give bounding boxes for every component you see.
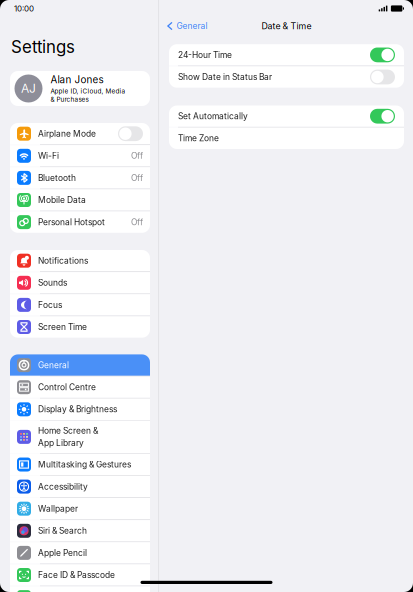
staticText: Sounds <box>38 278 67 288</box>
button[interactable]: Home Screen & <box>10 421 150 453</box>
button[interactable]: Mobile Data <box>10 189 150 211</box>
button[interactable]: Time Zone <box>169 128 404 149</box>
staticText: Wi-Fi <box>38 151 59 161</box>
staticText: Face ID & Passcode <box>38 570 115 580</box>
button[interactable]: Multitasking & Gestures <box>10 454 150 475</box>
staticText: & Purchases <box>50 95 88 103</box>
button[interactable]: Bluetooth <box>10 167 150 189</box>
staticText: Siri & Search <box>38 526 87 536</box>
staticText: Bluetooth <box>38 173 76 183</box>
staticText: 24-Hour Time <box>178 50 232 60</box>
button[interactable]: Screen Time <box>10 316 150 338</box>
staticText: App Library <box>38 438 84 448</box>
button[interactable]: Set Automatically <box>169 105 404 127</box>
button[interactable]: Battery <box>10 586 150 592</box>
button[interactable]: 24-Hour Time <box>169 44 404 66</box>
button[interactable]: Siri & Search <box>10 520 150 541</box>
staticText: Show Date in Status Bar <box>178 72 272 82</box>
button[interactable]: General <box>165 18 209 34</box>
button[interactable]: AJ <box>10 71 150 106</box>
button[interactable]: Display & Brightness <box>10 399 150 420</box>
staticText: Settings <box>11 37 75 57</box>
staticText: Personal Hotspot <box>38 217 105 227</box>
staticText: Apple Pencil <box>38 548 87 558</box>
button[interactable]: Control Centre <box>10 376 150 398</box>
staticText: Apple ID, iCloud, Media <box>50 87 125 95</box>
button[interactable]: General <box>10 354 150 376</box>
button[interactable]: Accessibility <box>10 476 150 497</box>
staticText: Multitasking & Gestures <box>38 459 131 470</box>
staticText: 10:00 <box>14 4 34 13</box>
staticText: General <box>176 21 207 31</box>
button[interactable]: Focus <box>10 294 150 316</box>
staticText: Focus <box>38 300 62 310</box>
staticText: Alan Jones <box>50 74 103 86</box>
staticText: Wallpaper <box>38 504 78 514</box>
button[interactable]: Notifications <box>10 250 150 271</box>
staticText: Off <box>131 173 143 183</box>
button[interactable]: Wi-Fi <box>10 145 150 166</box>
staticText: Off <box>131 217 143 227</box>
staticText: Control Centre <box>38 382 96 392</box>
button[interactable]: Personal Hotspot <box>10 211 150 233</box>
staticText: Date & Time <box>261 21 311 31</box>
staticText: Mobile Data <box>38 195 86 205</box>
staticText: Screen Time <box>38 322 87 332</box>
button[interactable]: Show Date in Status Bar <box>169 66 404 88</box>
button[interactable]: Sounds <box>10 272 150 293</box>
button[interactable]: Airplane Mode <box>10 123 150 144</box>
staticText: General <box>38 360 69 370</box>
staticText: Accessibility <box>38 481 88 492</box>
staticText: Airplane Mode <box>38 129 96 139</box>
staticText: Time Zone <box>178 133 219 143</box>
staticText: AJ <box>21 81 36 96</box>
staticText: Off <box>131 151 143 161</box>
staticText: Display & Brightness <box>38 404 117 414</box>
button[interactable]: Face ID & Passcode <box>10 564 150 586</box>
staticText: Set Automatically <box>178 111 248 121</box>
button[interactable]: Apple Pencil <box>10 542 150 564</box>
staticText: Home Screen & <box>38 426 98 436</box>
button[interactable]: Wallpaper <box>10 498 150 519</box>
staticText: Notifications <box>38 256 88 266</box>
